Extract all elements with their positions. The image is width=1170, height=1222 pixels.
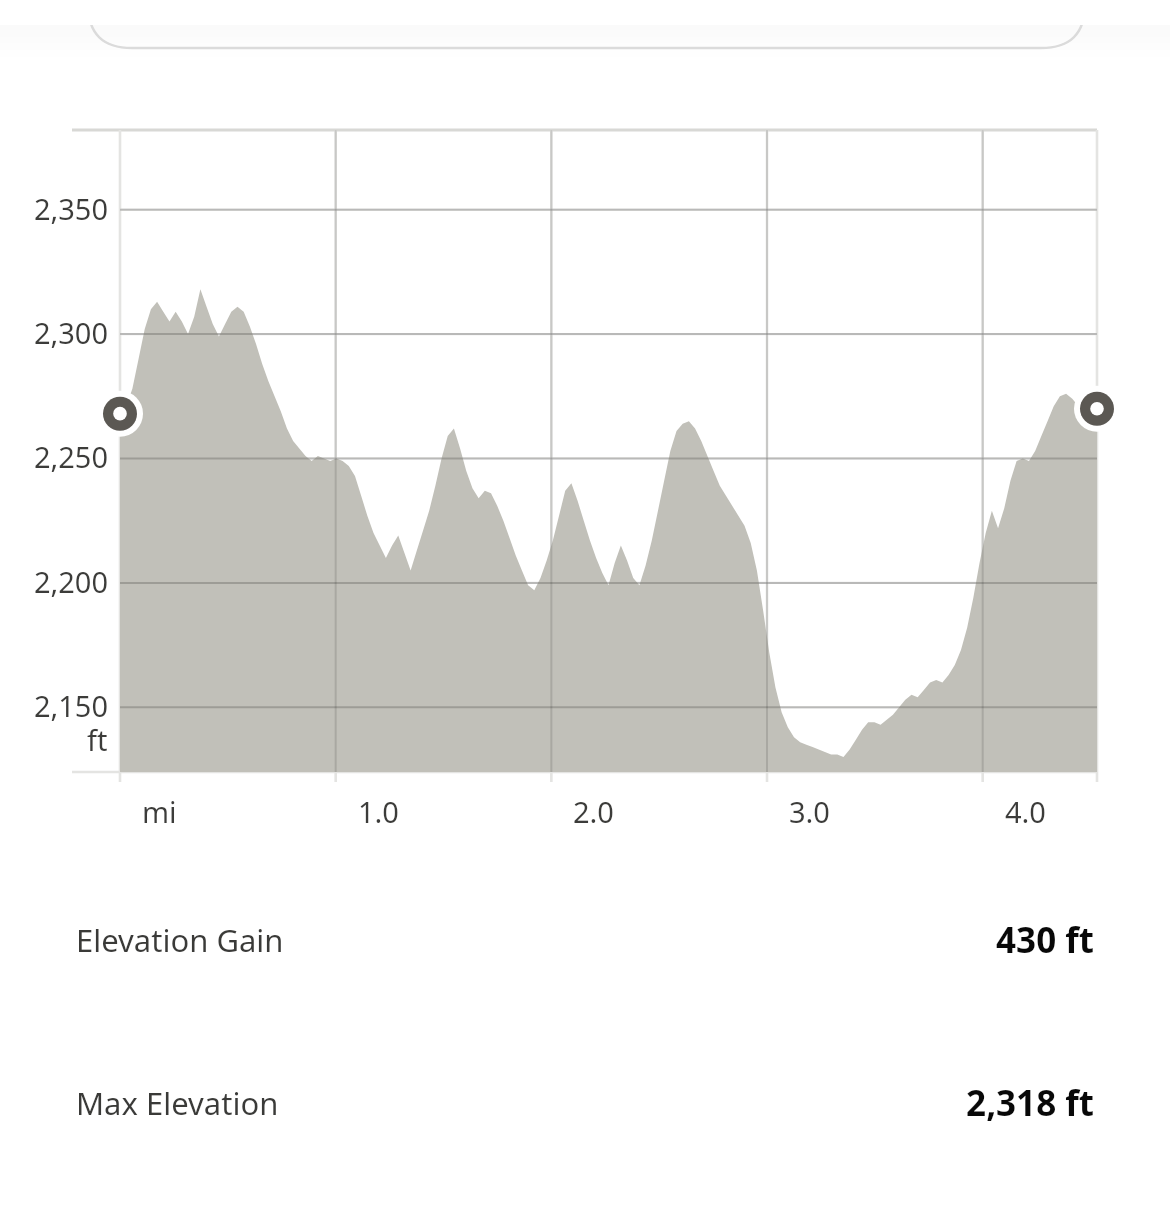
staticText: Max Elevation <box>76 1082 279 1124</box>
staticText: 2.0 <box>573 792 614 831</box>
staticText: 430 ft <box>996 916 1094 964</box>
staticText: 2,318 ft <box>966 1079 1094 1127</box>
staticText: 2,150 <box>33 686 108 725</box>
staticText: Elevation Gain <box>76 919 284 961</box>
staticText: mi <box>142 792 177 831</box>
staticText: 2,300 <box>33 313 108 352</box>
staticText: 2,250 <box>33 437 108 476</box>
staticText: ft <box>87 720 108 759</box>
staticText: 1.0 <box>358 792 399 831</box>
staticText: 4.0 <box>1005 792 1046 831</box>
staticText: 2,200 <box>33 562 108 601</box>
other: Elevation profile chart <box>0 110 1170 830</box>
staticText: 3.0 <box>789 792 830 831</box>
button[interactable]: Elevation Gain <box>0 898 1170 982</box>
staticText: 2,350 <box>33 189 108 228</box>
button[interactable]: Max Elevation <box>0 1061 1170 1145</box>
